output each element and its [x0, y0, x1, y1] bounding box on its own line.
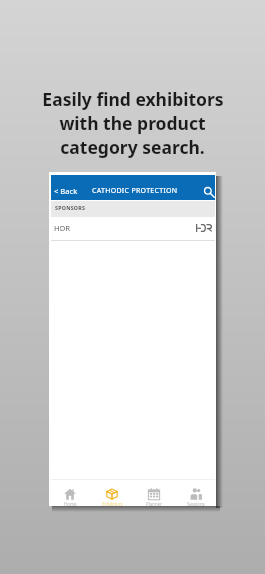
staticText: CATHODIC PROTECTION [92, 186, 178, 196]
button[interactable]: Exhibitors [91, 480, 133, 506]
staticText: with the product [59, 111, 206, 135]
button[interactable]: HDR [51, 217, 215, 240]
staticText: Exhibitors [102, 501, 123, 507]
staticText: SPONSORS [55, 204, 86, 211]
staticText: Sessions [187, 501, 205, 507]
button[interactable]: < Back [53, 184, 79, 198]
button[interactable]: Search [201, 184, 217, 200]
button[interactable]: Home [49, 480, 91, 506]
staticText: Planner [146, 501, 162, 507]
staticText: Home [64, 501, 77, 507]
staticText: category search. [60, 135, 205, 159]
staticText: HDR [54, 223, 70, 233]
button[interactable]: Sessions [175, 480, 217, 506]
staticText: < Back [54, 186, 78, 196]
button[interactable]: Planner [133, 480, 175, 506]
staticText: Easily find exhibitors [42, 87, 224, 111]
